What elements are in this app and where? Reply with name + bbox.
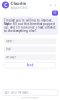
button[interactable]: Send [4, 62, 56, 68]
staticText: < [49, 2, 51, 8]
staticText: Support bot [10, 6, 27, 9]
staticText: Type your message... [4, 91, 32, 94]
staticText: C [4, 1, 7, 9]
staticText: Email [5, 47, 11, 51]
staticText: Message [5, 55, 16, 59]
staticText: Name? [5, 39, 13, 43]
staticText: i [55, 2, 56, 8]
staticText: Send [26, 63, 33, 67]
staticText: Claude can make mistakes [21, 97, 39, 98]
staticText: Claudia [10, 1, 25, 6]
staticText: Hi [53, 11, 56, 15]
button[interactable]: Info [53, 2, 58, 7]
staticText: I'm glad you're willing to improve. Mayb… [4, 19, 56, 33]
button[interactable]: Share [48, 2, 53, 7]
